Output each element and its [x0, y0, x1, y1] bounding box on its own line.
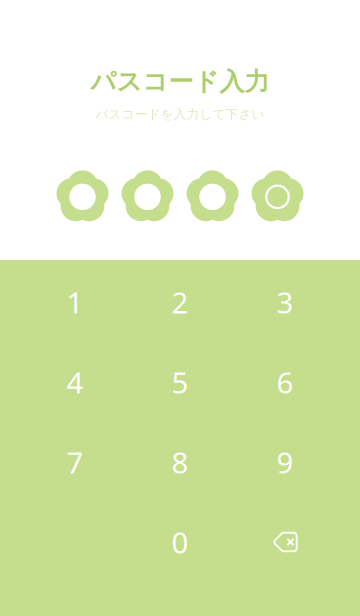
staticText: 5	[171, 362, 188, 401]
button[interactable]: 9	[232, 422, 337, 502]
button[interactable]: 6	[232, 342, 337, 422]
staticText: 0	[171, 522, 188, 561]
staticText: パスコードを入力して下さい	[95, 106, 264, 122]
staticText: パスコード入力	[90, 66, 269, 97]
staticText: 7	[66, 442, 83, 481]
staticText: 9	[276, 442, 293, 481]
staticText: 2	[171, 282, 188, 321]
button[interactable]: 0	[127, 502, 232, 582]
button[interactable]: 2	[127, 262, 232, 342]
button[interactable]: 3	[232, 262, 337, 342]
staticText: 4	[66, 362, 83, 401]
staticText: 8	[171, 442, 188, 481]
staticText: 3	[276, 282, 293, 321]
button[interactable]: 5	[127, 342, 232, 422]
button[interactable]: 8	[127, 422, 232, 502]
staticText: 6	[276, 362, 293, 401]
button[interactable]: Delete	[232, 502, 337, 582]
button[interactable]: 4	[22, 342, 127, 422]
button[interactable]: 7	[22, 422, 127, 502]
staticText: 1	[66, 282, 83, 321]
button[interactable]: 1	[22, 262, 127, 342]
